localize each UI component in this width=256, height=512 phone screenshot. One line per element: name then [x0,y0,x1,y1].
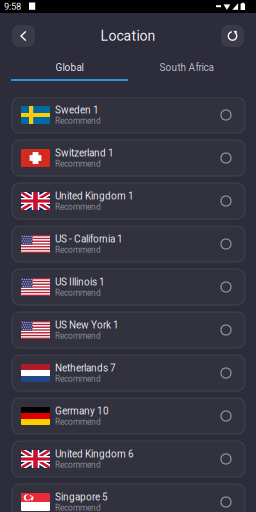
button[interactable]: Singapore 5 [12,484,245,512]
staticText: Global [55,62,83,73]
staticText: Recommend [55,245,101,255]
staticText: Recommend [55,202,101,212]
staticText: United Kingdom 6 [55,448,134,460]
button[interactable]: United Kingdom 6 [12,441,245,477]
staticText: Netherlands 7 [55,362,116,374]
staticText: Recommend [55,460,101,470]
staticText: Recommend [55,116,101,126]
staticText: Recommend [55,503,101,512]
button[interactable]: Back [12,25,35,47]
staticText: US Illinois 1 [55,276,105,288]
button[interactable]: Germany 10 [12,398,245,434]
staticText: Location [100,28,155,44]
button[interactable]: US New York 1 [12,312,245,348]
button[interactable]: Switzerland 1 [12,140,245,176]
button[interactable]: Global [11,56,128,81]
staticText: Recommend [55,288,101,298]
staticText: Switzerland 1 [55,147,114,159]
staticText: Recommend [55,159,101,169]
staticText: Recommend [55,374,101,384]
button[interactable]: US - California 1 [12,226,245,262]
staticText: US - California 1 [55,233,123,245]
staticText: South Africa [159,62,213,73]
button[interactable]: Sweden 1 [12,97,245,133]
staticText: 9:58 [4,1,21,12]
staticText: Recommend [55,417,101,427]
staticText: United Kingdom 1 [55,190,134,202]
staticText: Singapore 5 [55,491,108,503]
staticText: Germany 10 [55,405,109,417]
button[interactable]: US Illinois 1 [12,269,245,305]
button[interactable]: Refresh [221,25,244,47]
staticText: Sweden 1 [55,104,99,116]
button[interactable]: Netherlands 7 [12,355,245,391]
button[interactable]: United Kingdom 1 [12,183,245,219]
staticText: Recommend [55,331,101,341]
button[interactable]: South Africa [128,56,245,81]
staticText: US New York 1 [55,319,119,331]
